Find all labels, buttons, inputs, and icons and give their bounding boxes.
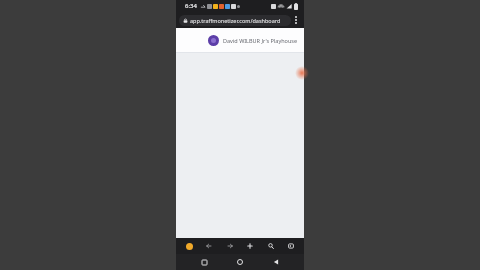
button[interactable]: Back [268, 254, 284, 270]
staticText: David WILBUR Jr's Playhouse [223, 37, 298, 44]
button[interactable]: Profile [181, 238, 197, 254]
button[interactable]: More options [291, 12, 301, 28]
button[interactable]: David WILBUR Jr's Playhouse [176, 28, 304, 52]
button[interactable]: Tabs [283, 238, 299, 254]
button[interactable]: Recent apps [196, 254, 212, 270]
button[interactable]: New tab [242, 238, 258, 254]
staticText: app.traffmonetizer.com/dashboard [190, 17, 281, 24]
button[interactable]: Back [201, 238, 217, 254]
button[interactable]: Forward [222, 238, 238, 254]
staticText: 6:34 [185, 2, 197, 10]
button[interactable]: app.traffmonetizer.com/dashboard [179, 15, 291, 26]
button[interactable]: Search [263, 238, 279, 254]
button[interactable]: Home [232, 254, 248, 270]
